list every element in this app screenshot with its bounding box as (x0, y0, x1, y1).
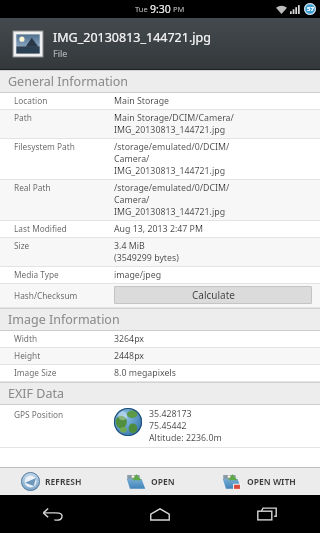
staticText: 57 (307, 5, 314, 13)
staticText: Hash/Checksum (14, 290, 78, 301)
staticText: GPS Position (14, 409, 64, 420)
button[interactable]: Image Size (0, 365, 320, 382)
button[interactable]: Real Path (0, 180, 320, 221)
staticText: IMG_20130813_144721.jpg (53, 29, 211, 46)
staticText: /storage/emulated/0/DCIM/ (114, 141, 230, 153)
staticText: General Information (8, 73, 129, 90)
button[interactable]: Size (0, 238, 320, 267)
staticText: 9:30 (150, 2, 171, 16)
button[interactable]: Calculate (114, 286, 312, 304)
staticText: Real Path (14, 182, 51, 193)
staticText: Main Storage (114, 95, 169, 107)
staticText: REFRESH (45, 476, 82, 488)
button[interactable]: Media Type (0, 267, 320, 284)
button[interactable]: OPEN (103, 468, 198, 495)
staticText: Altitude: 2236.0m (149, 432, 222, 444)
staticText: IMG_20130813_144721.jpg (114, 165, 226, 177)
staticText: Size (14, 240, 30, 251)
staticText: Width (14, 333, 38, 344)
staticText: Calculate (192, 288, 235, 302)
button[interactable]: Width (0, 331, 320, 348)
staticText: Image Size (14, 367, 57, 378)
button[interactable]: Recent apps (213, 495, 320, 533)
button[interactable]: Path (0, 110, 320, 139)
staticText: Main Storage/DCIM/Camera/ (114, 112, 234, 124)
staticText: Location (14, 95, 48, 106)
button[interactable]: Last Modified (0, 221, 320, 238)
staticText: OPEN WITH (247, 476, 296, 488)
button[interactable]: Back (0, 495, 106, 533)
button[interactable]: Filesystem Path (0, 139, 320, 180)
staticText: Tue (135, 4, 150, 14)
staticText: Path (14, 112, 32, 123)
staticText: Media Type (14, 269, 59, 280)
staticText: Filesystem Path (14, 141, 75, 152)
staticText: 8.0 megapixels (114, 367, 176, 379)
staticText: 75.45442 (149, 420, 187, 432)
staticText: PM (171, 4, 185, 14)
staticText: Aug 13, 2013 2:47 PM (114, 223, 203, 235)
button[interactable]: Location (0, 93, 320, 110)
staticText: Last Modified (14, 223, 67, 234)
staticText: 3.4 MiB (114, 240, 145, 252)
button[interactable]: REFRESH (0, 468, 103, 495)
staticText: /storage/emulated/0/DCIM/ (114, 182, 230, 194)
staticText: 35.428173 (149, 408, 192, 420)
staticText: 3264px (114, 333, 145, 345)
staticText: IMG_20130813_144721.jpg (114, 124, 226, 136)
button[interactable]: Home (106, 495, 213, 533)
staticText: EXIF Data (8, 385, 64, 402)
button[interactable]: Height (0, 348, 320, 365)
button[interactable]: OPEN WITH (198, 468, 320, 495)
staticText: File (53, 47, 68, 59)
staticText: Image Information (8, 311, 120, 328)
button[interactable]: GPS Position (0, 405, 320, 448)
staticText: 2448px (114, 350, 145, 362)
staticText: image/jpeg (114, 269, 162, 281)
staticText: Camera/ (114, 194, 150, 206)
staticText: (3549299 bytes) (114, 252, 179, 264)
staticText: OPEN (151, 476, 175, 488)
staticText: Height (14, 350, 41, 361)
staticText: Camera/ (114, 153, 150, 165)
staticText: IMG_20130813_144721.jpg (114, 206, 226, 218)
